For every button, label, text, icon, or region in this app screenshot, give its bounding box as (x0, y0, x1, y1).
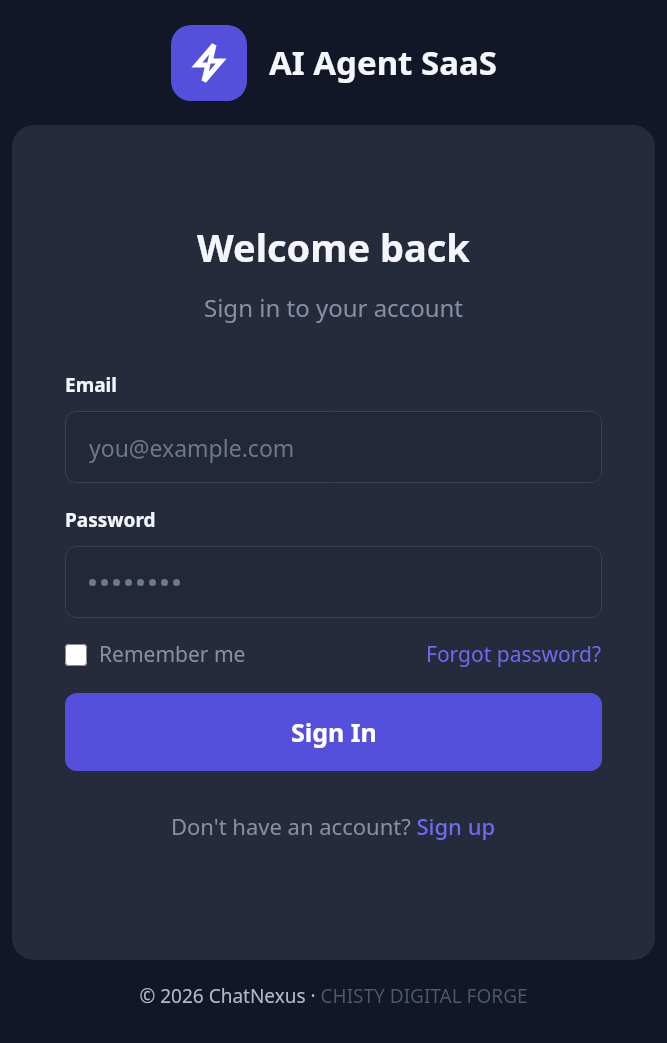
button[interactable]: Sign In (65, 693, 602, 771)
button[interactable]: Forgot password? (426, 640, 602, 669)
staticText: AI Agent SaaS (269, 40, 497, 85)
button[interactable]: Don't have an account? Sign up (171, 811, 496, 841)
staticText: Remember me (99, 640, 246, 669)
staticText: Sign In (291, 715, 377, 749)
staticText: Don't have an account? Sign up (171, 811, 496, 841)
staticText: Welcome back (197, 221, 470, 273)
staticText: Email (65, 372, 117, 398)
button[interactable]: you@example.com (65, 411, 602, 483)
button[interactable] (65, 546, 602, 618)
staticText: Sign in to your account (204, 291, 463, 324)
staticText: Password (65, 507, 156, 533)
staticText: Forgot password? (426, 640, 602, 669)
staticText: © 2026 ChatNexus · CHISTY DIGITAL FORGE (139, 983, 528, 1009)
staticText: you@example.com (89, 432, 295, 463)
other: App logo (171, 25, 247, 101)
button[interactable]: Remember me (65, 640, 246, 669)
